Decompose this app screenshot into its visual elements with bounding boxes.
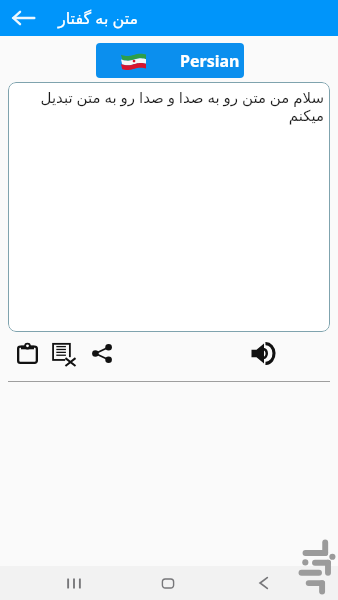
button[interactable]: Recents [58,567,90,599]
button[interactable]: Clear text [51,340,77,366]
button[interactable]: Share [89,340,115,366]
staticText: سلام من متن رو به صدا و صدا رو به متن تب… [16,87,324,124]
button[interactable]: Speak [249,339,277,367]
button[interactable]: Persian [96,43,244,78]
staticText: Persian [180,50,240,72]
button[interactable]: Paste [14,340,40,366]
button[interactable]: Back [247,567,279,599]
staticText: متن به گفتار [58,7,139,29]
button[interactable]: Home [152,567,184,599]
button[interactable]: سلام من متن رو به صدا و صدا رو به متن تب… [8,82,330,332]
button[interactable]: Back [10,5,36,31]
